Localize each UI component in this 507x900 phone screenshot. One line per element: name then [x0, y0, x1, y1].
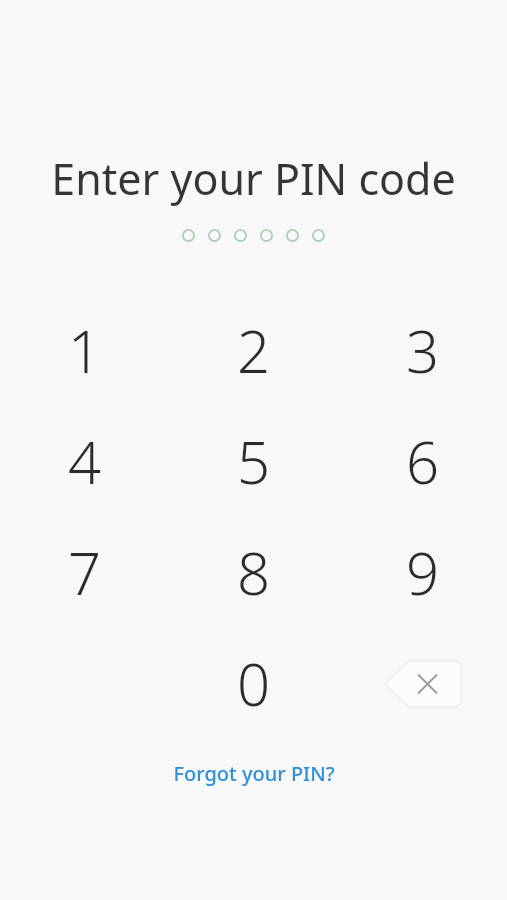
- button[interactable]: 5: [169, 406, 338, 517]
- staticText: 4: [68, 422, 102, 501]
- button[interactable]: 2: [169, 295, 338, 406]
- button[interactable]: Forgot your PIN?: [173, 760, 335, 787]
- staticText: 6: [406, 422, 440, 501]
- staticText: 9: [406, 533, 440, 612]
- staticText: 5: [237, 422, 271, 501]
- staticText: 1: [68, 311, 102, 390]
- button[interactable]: 3: [338, 295, 507, 406]
- staticText: 0: [237, 644, 271, 723]
- button[interactable]: 8: [169, 517, 338, 628]
- staticText: 7: [68, 533, 102, 612]
- staticText: 2: [237, 311, 271, 390]
- staticText: 8: [237, 533, 271, 612]
- button[interactable]: 7: [0, 517, 169, 628]
- button[interactable]: 1: [0, 295, 169, 406]
- button[interactable]: 0: [169, 628, 338, 739]
- button[interactable]: Backspace: [338, 628, 507, 739]
- staticText: Forgot your PIN?: [173, 760, 335, 787]
- button[interactable]: 6: [338, 406, 507, 517]
- button[interactable]: 9: [338, 517, 507, 628]
- staticText: Enter your PIN code: [0, 149, 507, 208]
- staticText: 3: [406, 311, 440, 390]
- button[interactable]: 4: [0, 406, 169, 517]
